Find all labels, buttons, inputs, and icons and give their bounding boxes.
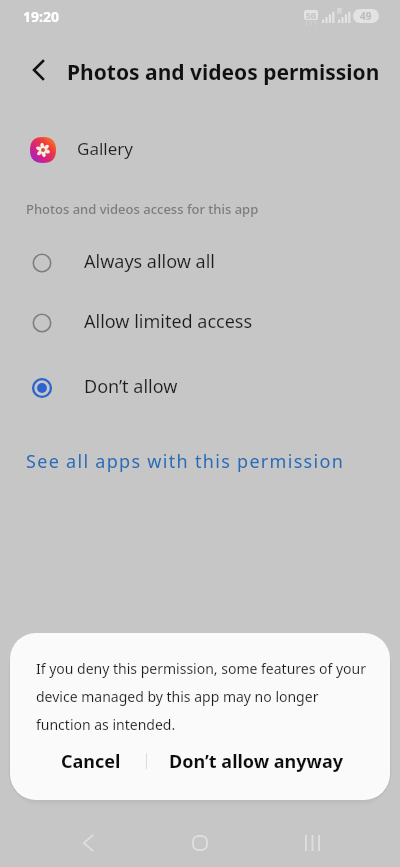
staticText: 5G [306, 10, 317, 20]
button[interactable]: Always allow all [0, 233, 400, 293]
staticText: Allow limited access [84, 309, 253, 334]
staticText: 19:20 [23, 7, 59, 26]
staticText: Photos and videos permission [67, 58, 380, 87]
button[interactable]: Back [14, 46, 62, 94]
staticText: Cancel [61, 749, 121, 774]
staticText: 49 [360, 9, 372, 23]
staticText: Gallery [77, 137, 133, 160]
staticText: R [337, 5, 343, 16]
button[interactable]: See all apps with this permission [26, 442, 345, 480]
button[interactable]: Home [172, 819, 228, 867]
staticText: Photos and videos access for this app [26, 200, 259, 218]
button[interactable]: Don’t allow anyway [157, 737, 355, 785]
staticText: If you deny this permission, some featur… [36, 659, 376, 734]
staticText: Don’t allow [84, 374, 178, 399]
button[interactable]: Don’t allow [0, 358, 400, 418]
button[interactable]: Recent apps [284, 819, 340, 867]
button[interactable]: Allow limited access [0, 293, 400, 353]
button[interactable]: Gallery [0, 128, 400, 172]
staticText: Always allow all [84, 249, 216, 274]
button[interactable]: Cancel [25, 737, 156, 785]
staticText: See all apps with this permission [26, 449, 345, 474]
staticText: Don’t allow anyway [169, 749, 344, 774]
